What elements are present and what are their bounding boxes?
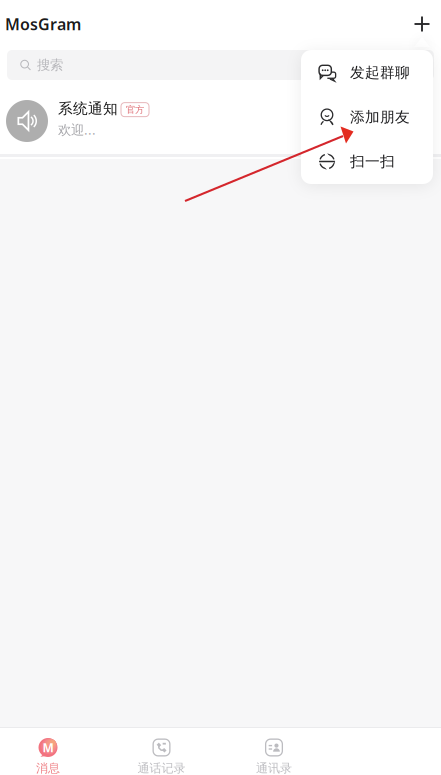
staticText: 通话记录 xyxy=(137,761,185,775)
button[interactable]: M xyxy=(0,728,96,775)
staticText: MosGram xyxy=(5,13,81,35)
staticText: 系统通知 xyxy=(58,100,118,118)
staticText: 扫一扫 xyxy=(350,152,395,170)
staticText: 发起群聊 xyxy=(350,63,410,81)
staticText: 通讯录 xyxy=(256,761,292,775)
button[interactable]: 通讯录 xyxy=(227,728,321,775)
staticText: M xyxy=(42,739,53,755)
button[interactable]: 搜索 xyxy=(7,50,434,80)
staticText: 添加朋友 xyxy=(350,108,410,126)
button[interactable]: 添加朋友 xyxy=(301,95,433,139)
button[interactable]: New xyxy=(406,8,438,40)
staticText: 搜索 xyxy=(37,57,63,73)
button[interactable]: 通话记录 xyxy=(96,728,227,775)
button[interactable]: 系统通知 xyxy=(0,80,441,154)
button[interactable]: 扫一扫 xyxy=(301,139,433,184)
staticText: 官方 xyxy=(126,104,144,115)
staticText: 欢迎... xyxy=(58,121,96,138)
staticText: 消息 xyxy=(36,761,60,775)
button[interactable]: 发起群聊 xyxy=(301,50,433,95)
